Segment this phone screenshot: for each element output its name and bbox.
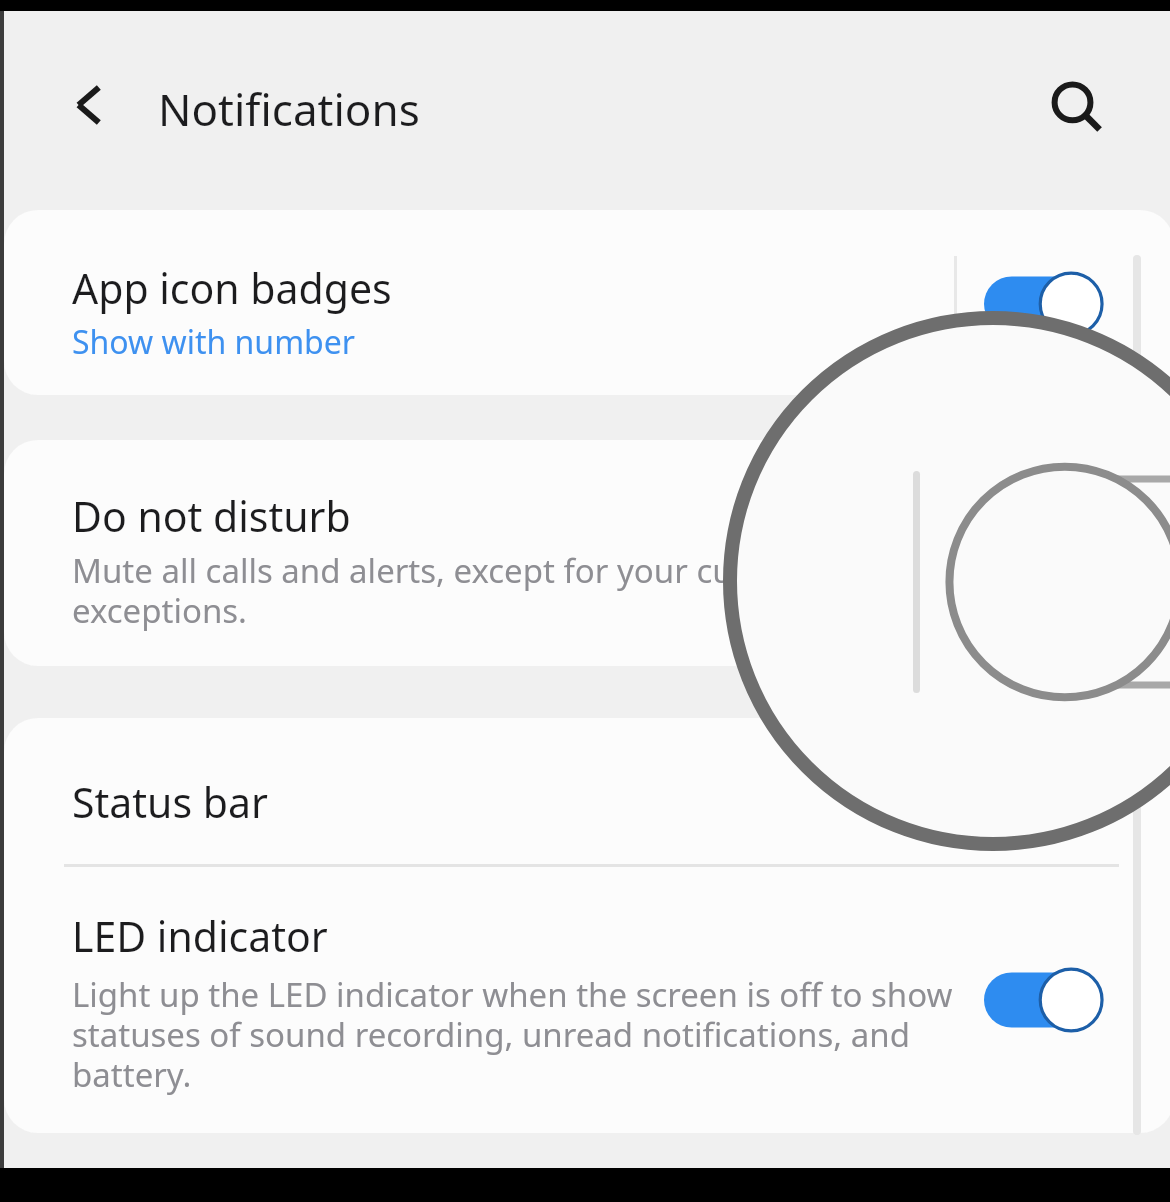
staticText: Show with number — [72, 320, 356, 364]
button[interactable]: App icon badges, on — [976, 260, 1112, 348]
staticText: battery. — [72, 1052, 192, 1097]
staticText: Notifications — [158, 79, 420, 139]
button[interactable]: Do not disturb — [4, 440, 1170, 666]
staticText: Status bar — [72, 774, 268, 830]
staticText: Do not disturb — [72, 488, 351, 544]
staticText: Light up the LED indicator when the scre… — [72, 972, 953, 1017]
staticText: exceptions. — [72, 588, 247, 633]
button[interactable]: LED indicator, on — [976, 956, 1112, 1044]
staticText: statuses of sound recording, unread noti… — [72, 1012, 910, 1057]
staticText: App icon badges — [72, 260, 392, 316]
button[interactable]: App icon badges — [4, 210, 1170, 395]
button[interactable]: Search — [1032, 63, 1122, 153]
button[interactable]: Back — [48, 63, 132, 147]
staticText: LED indicator — [72, 908, 328, 964]
staticText: Mute all calls and alerts, except for yo… — [72, 548, 812, 593]
button[interactable]: Status bar — [4, 718, 1170, 1133]
